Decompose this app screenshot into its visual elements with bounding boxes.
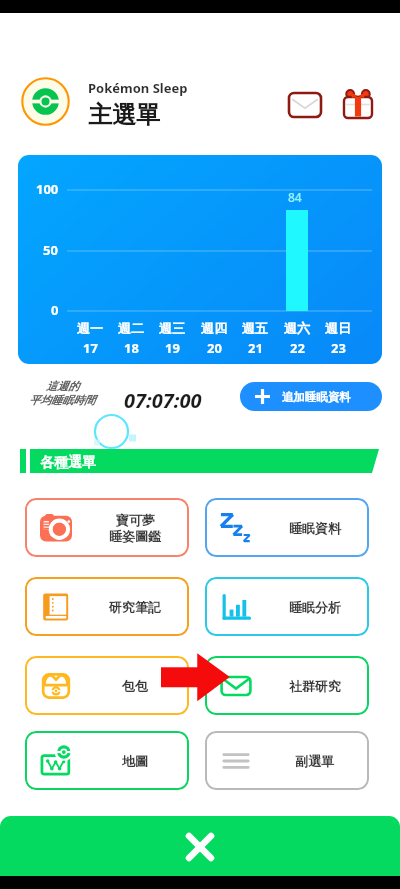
staticText: 週四 [201,320,227,336]
staticText: 寶可夢 [116,512,155,528]
staticText: 22 [290,339,305,357]
staticText: 這週的 [46,379,79,393]
staticText: 84 [288,189,302,205]
staticText: 睡眠資料 [289,520,341,536]
button[interactable]: 寶可夢 [25,498,189,557]
staticText: 週一 [77,320,103,336]
staticText: 19 [165,339,180,357]
staticText: 18 [124,339,139,357]
staticText: 50 [43,241,58,259]
staticText: 研究筆記 [109,599,161,615]
staticText: 23 [331,339,346,357]
staticText: 0 [51,301,59,319]
button[interactable]: 社群研究 [205,656,369,715]
staticText: 07:07:00 [124,387,202,414]
button[interactable]: 睡眠分析 [205,577,369,636]
staticText: 主選單 [88,100,160,130]
staticText: 副選單 [295,753,334,769]
button[interactable]: 睡眠資料 [205,498,369,557]
button[interactable]: 地圖 [25,731,189,790]
staticText: 包包 [122,678,148,694]
staticText: 週三 [159,320,185,336]
button[interactable]: 研究筆記 [25,577,189,636]
staticText: 17 [83,339,98,357]
staticText: 睡眠分析 [289,599,341,615]
staticText: 追加睡眠資料 [282,390,351,404]
button[interactable]: Close [0,816,400,876]
staticText: 平均睡眠時間 [29,393,95,407]
staticText: 地圖 [122,753,148,769]
button[interactable]: 追加睡眠資料 [240,382,382,411]
button[interactable]: 副選單 [205,731,369,790]
button[interactable]: Mail [283,87,327,123]
staticText: 100 [36,180,59,198]
staticText: 週五 [242,320,268,336]
staticText: 週二 [118,320,144,336]
staticText: Pokémon Sleep [88,79,188,97]
staticText: 各種選單 [40,454,96,472]
staticText: 20 [207,339,222,357]
staticText: 睡姿圖鑑 [109,528,161,544]
staticText: 週六 [284,320,310,336]
staticText: 週日 [325,320,351,336]
button[interactable]: Pokemon Sleep logo [21,77,70,126]
staticText: 21 [248,339,263,357]
button[interactable]: Gifts [337,83,379,123]
button[interactable]: 包包 [25,656,189,715]
staticText: 社群研究 [289,678,341,694]
